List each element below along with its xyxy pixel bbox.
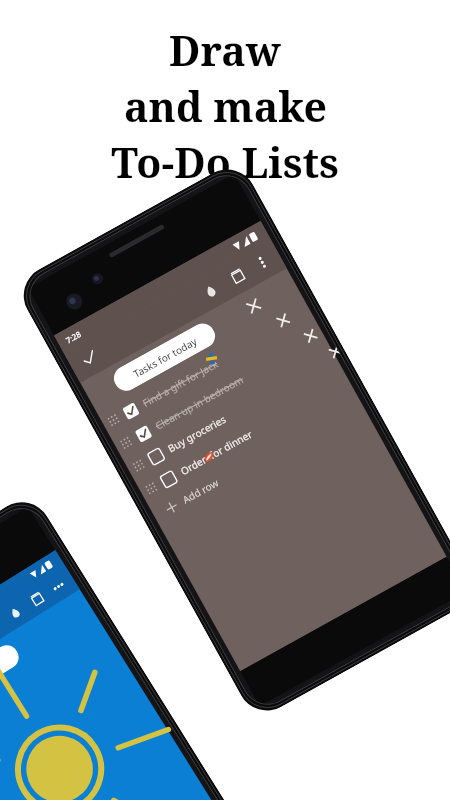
button[interactable]: More options <box>47 575 69 597</box>
staticText: Clean up in bedroom <box>153 372 246 432</box>
staticText: Add row <box>180 475 221 507</box>
button[interactable]: Crop <box>222 261 252 291</box>
button[interactable]: Just for fun <box>0 641 23 712</box>
button[interactable]: Buy groceries <box>123 345 342 482</box>
staticText: Just for fun <box>0 657 2 696</box>
button[interactable]: Add row <box>148 391 367 528</box>
staticText: Order for dinner <box>178 427 255 478</box>
button[interactable]: Find a gift for Jack <box>98 300 317 437</box>
staticText: Buy groceries <box>165 411 229 455</box>
button[interactable]: Clean up in bedroom <box>110 322 329 460</box>
staticText: Find a gift for Jack <box>140 357 220 410</box>
button[interactable]: More options <box>250 250 274 275</box>
staticText: Draw <box>169 22 281 78</box>
staticText: 7:28 <box>63 328 83 345</box>
button[interactable]: Crop <box>25 587 50 611</box>
button[interactable]: Done <box>76 344 103 372</box>
button[interactable]: To-do list app screenshot <box>13 159 450 721</box>
staticText: and make <box>124 78 327 134</box>
button[interactable]: Ink <box>4 602 26 624</box>
button[interactable]: Order for dinner <box>136 368 355 505</box>
staticText: Tasks for today <box>131 334 200 381</box>
button[interactable]: Tasks for today <box>109 319 219 395</box>
button[interactable]: Drawing app screenshot <box>0 491 254 800</box>
staticText: To-Do Lists <box>111 134 339 190</box>
button[interactable]: Ink <box>197 278 224 305</box>
